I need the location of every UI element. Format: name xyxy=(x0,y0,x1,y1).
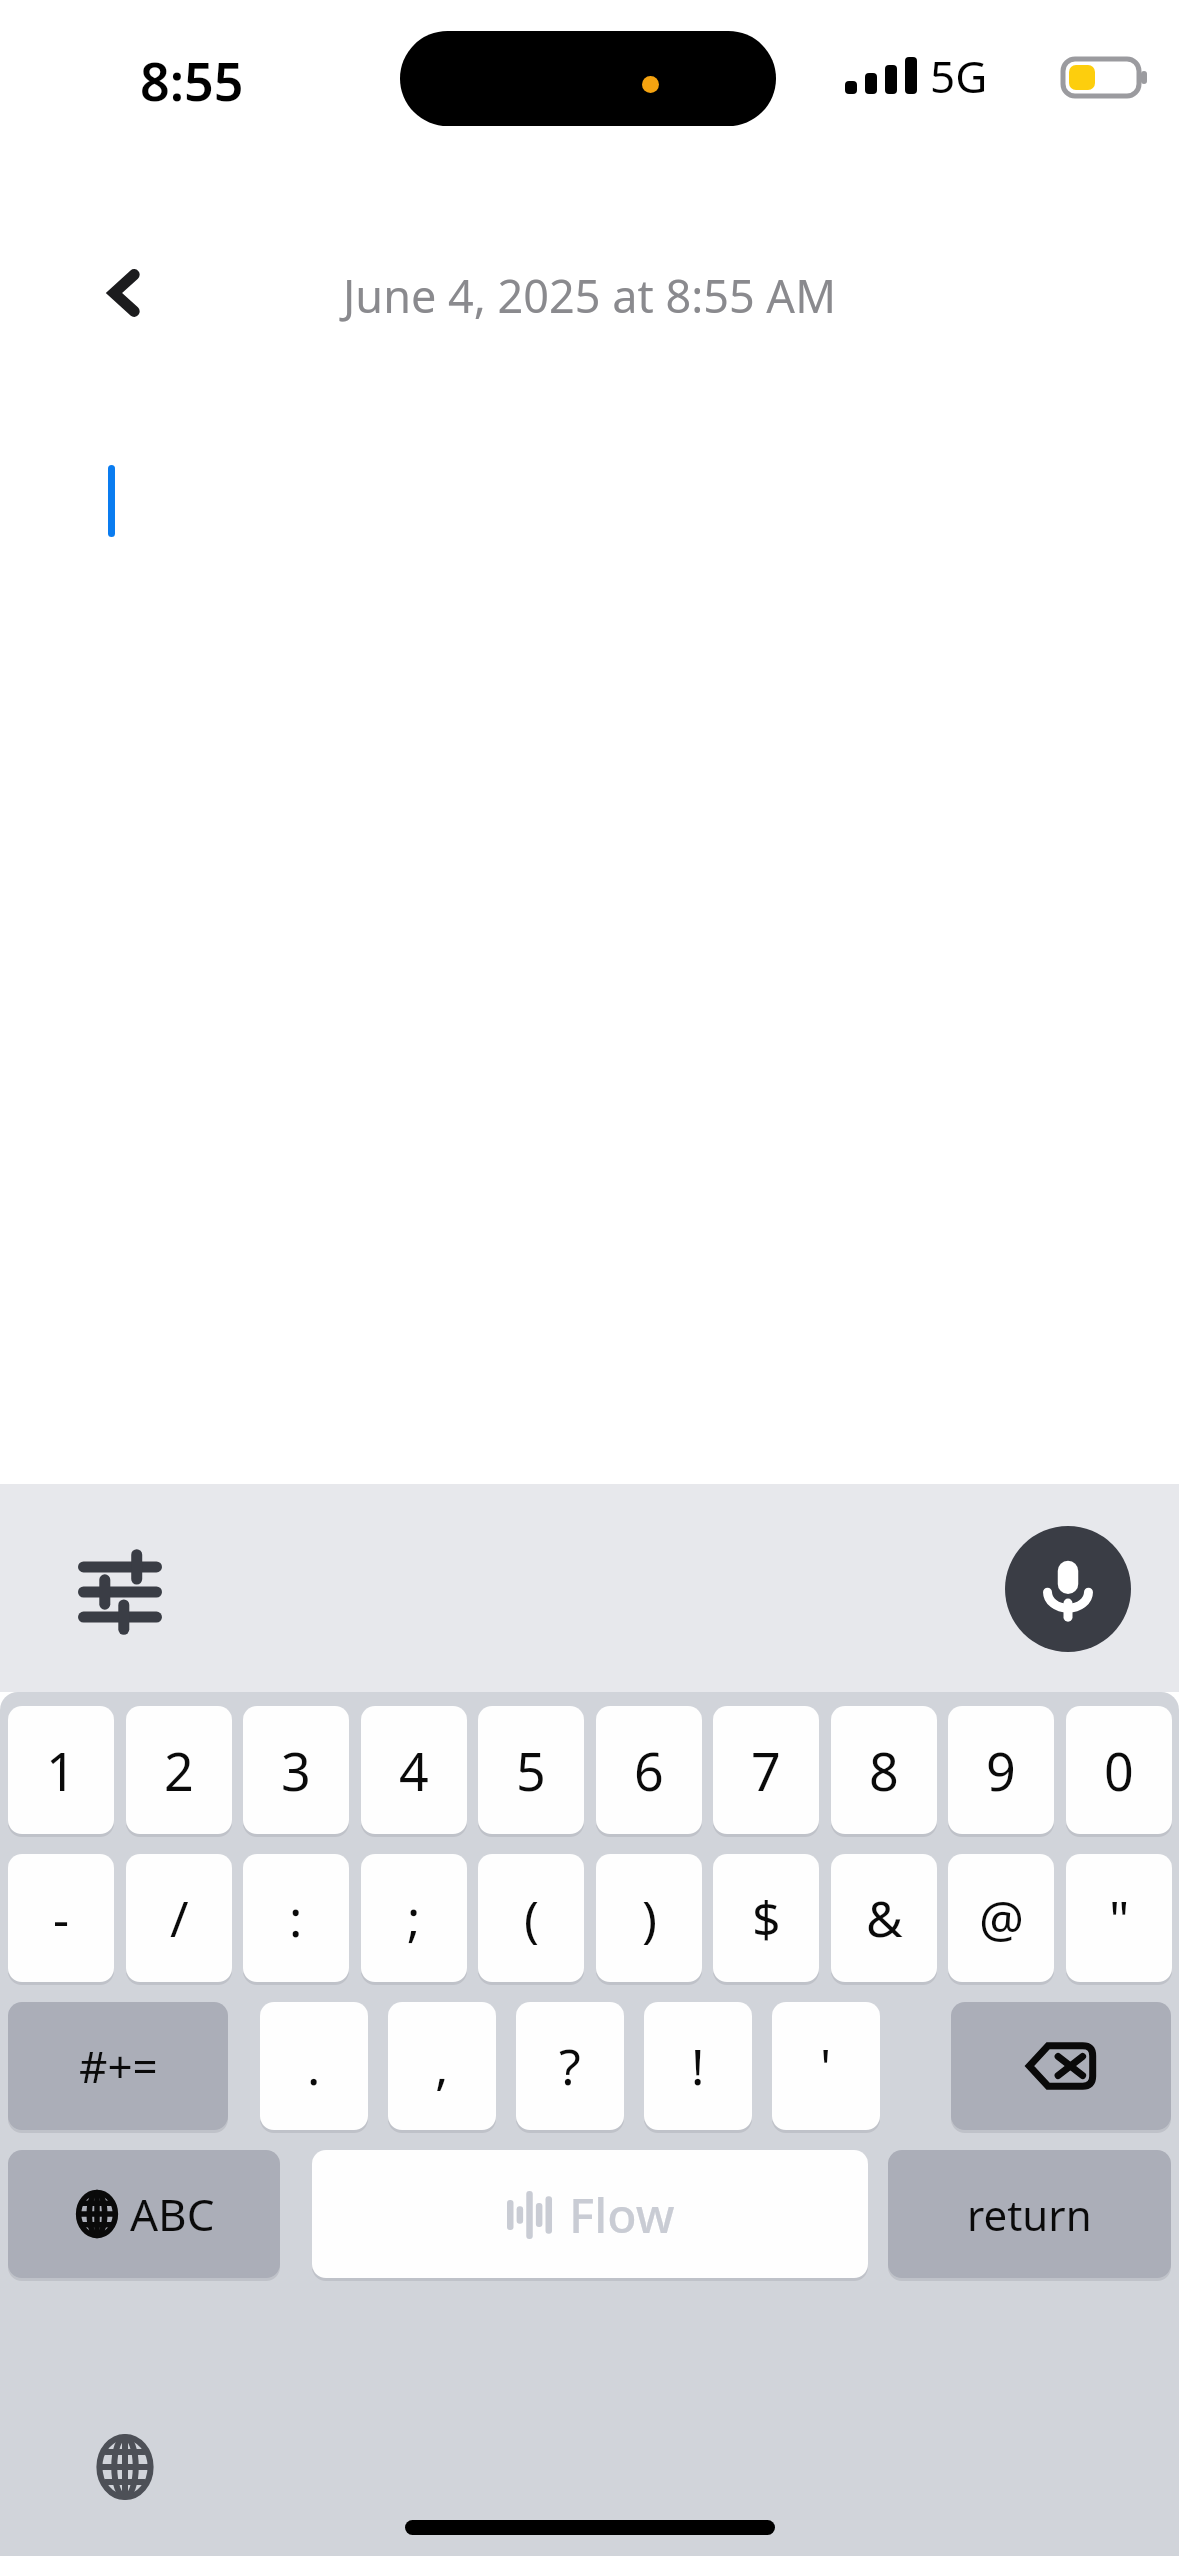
button[interactable]: 4 xyxy=(361,1706,467,1834)
staticText: , xyxy=(435,2032,449,2100)
button[interactable]: 9 xyxy=(948,1706,1054,1834)
button[interactable]: 1 xyxy=(8,1706,114,1834)
button[interactable]: " xyxy=(1066,1854,1172,1982)
staticText: 6 xyxy=(634,1735,664,1806)
staticText: ! xyxy=(691,2032,705,2100)
button[interactable]: #+= xyxy=(8,2002,228,2130)
staticText: ABC xyxy=(130,2184,215,2244)
staticText: $ xyxy=(752,1884,781,1952)
staticText: 0 xyxy=(1104,1735,1134,1806)
staticText: ) xyxy=(642,1884,657,1952)
staticText: . xyxy=(307,2032,321,2100)
staticText: Flow xyxy=(569,2182,675,2247)
staticText: / xyxy=(170,1884,189,1952)
staticText: #+= xyxy=(79,2036,158,2096)
button[interactable]: @ xyxy=(948,1854,1054,1982)
button[interactable]: ) xyxy=(596,1854,702,1982)
staticText: 3 xyxy=(281,1735,311,1806)
button[interactable]: $ xyxy=(713,1854,819,1982)
staticText: return xyxy=(967,2186,1092,2243)
staticText: June 4, 2025 at 8:55 AM xyxy=(343,265,836,326)
button[interactable]: Backspace xyxy=(951,2002,1171,2130)
button[interactable]: 6 xyxy=(596,1706,702,1834)
button[interactable]: ABC keyboard xyxy=(8,2150,280,2278)
button[interactable]: return xyxy=(888,2150,1171,2278)
button[interactable]: : xyxy=(243,1854,349,1982)
staticText: @ xyxy=(979,1884,1024,1952)
button[interactable]: ( xyxy=(478,1854,584,1982)
staticText: 2 xyxy=(164,1735,194,1806)
staticText: & xyxy=(866,1884,903,1952)
staticText: " xyxy=(1109,1884,1130,1952)
button[interactable]: Switch keyboard xyxy=(70,2412,180,2522)
staticText: 8 xyxy=(869,1735,899,1806)
button[interactable] xyxy=(0,370,1179,1480)
button[interactable]: 2 xyxy=(126,1706,232,1834)
button[interactable]: ? xyxy=(516,2002,624,2130)
button[interactable]: 3 xyxy=(243,1706,349,1834)
button[interactable]: & xyxy=(831,1854,937,1982)
button[interactable]: Keyboard settings xyxy=(60,1532,180,1652)
button[interactable]: ; xyxy=(361,1854,467,1982)
button[interactable]: 0 xyxy=(1066,1706,1172,1834)
staticText: 9 xyxy=(986,1735,1016,1806)
staticText: 5G xyxy=(930,46,988,106)
button[interactable]: ! xyxy=(644,2002,752,2130)
button[interactable]: Flow space xyxy=(312,2150,868,2278)
staticText: 8:55 xyxy=(140,45,244,115)
button[interactable]: 5 xyxy=(478,1706,584,1834)
staticText: ' xyxy=(820,2032,832,2100)
button[interactable]: 7 xyxy=(713,1706,819,1834)
button[interactable]: - xyxy=(8,1854,114,1982)
staticText: 5 xyxy=(516,1735,546,1806)
button[interactable]: , xyxy=(388,2002,496,2130)
button[interactable]: Dictate xyxy=(1005,1526,1131,1652)
staticText: ? xyxy=(559,2032,581,2100)
staticText: : xyxy=(289,1884,303,1952)
staticText: 4 xyxy=(399,1735,429,1806)
staticText: - xyxy=(53,1884,70,1952)
staticText: 7 xyxy=(751,1735,781,1806)
button[interactable]: . xyxy=(260,2002,368,2130)
button[interactable]: ' xyxy=(772,2002,880,2130)
button[interactable]: 8 xyxy=(831,1706,937,1834)
staticText: ; xyxy=(407,1884,421,1952)
button[interactable]: Back xyxy=(70,238,180,348)
button[interactable]: / xyxy=(126,1854,232,1982)
staticText: ( xyxy=(524,1884,539,1952)
staticText: 1 xyxy=(46,1735,76,1806)
